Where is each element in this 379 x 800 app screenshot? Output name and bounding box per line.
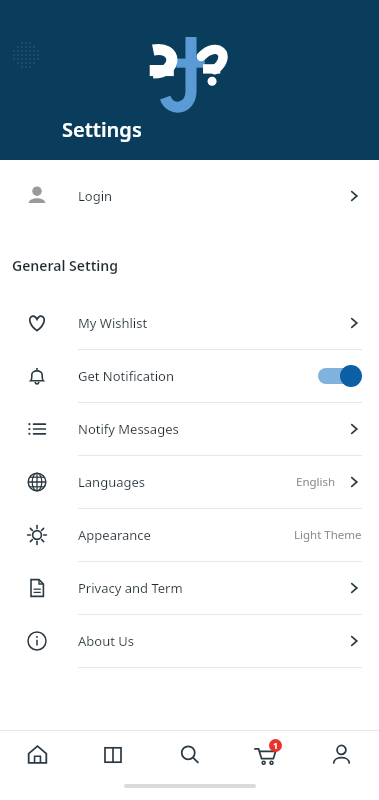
staticText: Login bbox=[78, 187, 113, 205]
button[interactable]: Search bbox=[151, 731, 227, 778]
button[interactable]: About Us bbox=[0, 615, 379, 667]
staticText: Settings bbox=[62, 116, 142, 143]
staticText: English bbox=[296, 474, 336, 490]
staticText: Get Notification bbox=[78, 367, 174, 385]
staticText: Appearance bbox=[78, 526, 151, 544]
button[interactable]: Catalog bbox=[75, 731, 151, 778]
button[interactable]: My Wishlist bbox=[0, 297, 379, 349]
button[interactable]: Languages bbox=[0, 456, 379, 508]
staticText: Privacy and Term bbox=[78, 579, 183, 597]
button[interactable]: Cart bbox=[227, 731, 303, 778]
staticText: General Setting bbox=[12, 256, 118, 275]
staticText: My Wishlist bbox=[78, 314, 148, 332]
staticText: Notify Messages bbox=[78, 420, 179, 438]
button[interactable]: Appearance bbox=[0, 509, 379, 561]
button[interactable]: Menu bbox=[12, 41, 40, 69]
staticText: Light Theme bbox=[294, 527, 362, 543]
button[interactable]: Home bbox=[0, 731, 75, 778]
staticText: Languages bbox=[78, 473, 146, 491]
button[interactable]: Notify Messages bbox=[0, 403, 379, 455]
button[interactable]: Get Notification toggle bbox=[318, 365, 362, 387]
staticText: 1 bbox=[273, 740, 278, 751]
button[interactable]: Login bbox=[0, 160, 379, 232]
staticText: About Us bbox=[78, 632, 135, 650]
button[interactable]: Account bbox=[303, 731, 379, 778]
button[interactable]: Privacy and Term bbox=[0, 562, 379, 614]
button[interactable]: Get Notification bbox=[0, 350, 379, 402]
